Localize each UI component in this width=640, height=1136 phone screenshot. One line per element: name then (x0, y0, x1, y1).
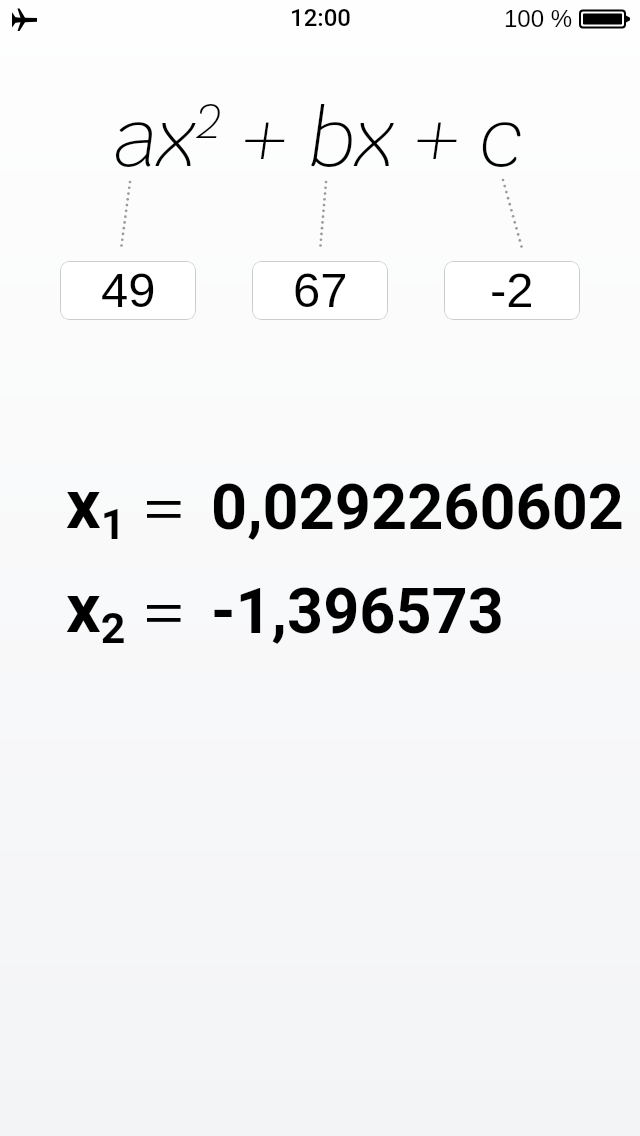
staticText: 12:00 (290, 4, 351, 32)
staticText: x2 (66, 569, 126, 653)
staticText: 100 % (504, 5, 573, 32)
staticText: x1 (66, 465, 126, 549)
staticText: 49 (101, 263, 156, 318)
staticText: 0,0292260602 (211, 471, 625, 545)
staticText: -1,396573 (211, 575, 504, 649)
other: Battery 100 percent (579, 8, 630, 30)
staticText: ax2 + bx + c (115, 87, 525, 188)
other: Airplane mode (12, 8, 37, 31)
button[interactable]: 67 (252, 261, 388, 320)
staticText: -2 (490, 263, 534, 318)
button[interactable]: 49 (60, 261, 196, 320)
staticText: 67 (293, 263, 348, 318)
button[interactable]: -2 (444, 261, 580, 320)
